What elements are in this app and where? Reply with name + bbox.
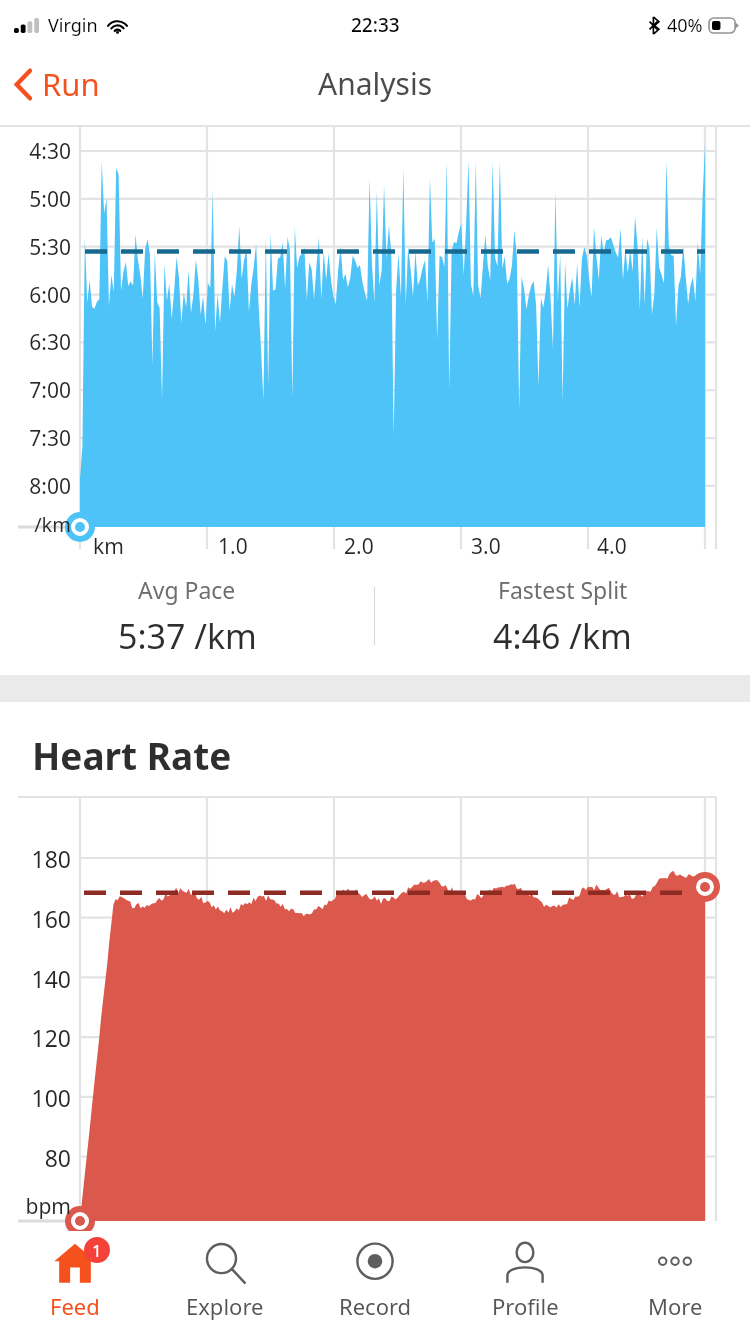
staticText: bpm	[0, 1192, 71, 1221]
button[interactable]: Explore	[150, 1231, 300, 1334]
staticText: Feed	[50, 1291, 100, 1321]
button[interactable]: Profile	[450, 1231, 600, 1334]
staticText: 40%	[667, 13, 703, 38]
staticText: 80	[0, 1142, 71, 1173]
staticText: 8:00	[0, 472, 71, 501]
staticText: More	[648, 1291, 703, 1321]
staticText: 5:00	[0, 185, 71, 214]
staticText: 5:30	[0, 233, 71, 262]
staticText: Virgin	[48, 13, 98, 38]
staticText: Explore	[186, 1291, 264, 1321]
staticText: 160	[0, 903, 71, 934]
staticText: 4:46 /km	[493, 613, 632, 659]
staticText: 6:30	[0, 328, 71, 357]
staticText: /km	[0, 511, 71, 538]
staticText: Run	[42, 63, 100, 105]
staticText: Avg Pace	[138, 574, 236, 605]
button[interactable]: Avg Pace	[0, 557, 374, 675]
staticText: 2.0	[344, 532, 374, 561]
staticText: 4.0	[597, 532, 627, 561]
staticText: 4:30	[0, 137, 71, 166]
staticText: 7:00	[0, 376, 71, 405]
staticText: Fastest Split	[498, 574, 628, 605]
staticText: 120	[0, 1022, 71, 1053]
staticText: 6:00	[0, 281, 71, 310]
staticText: 3.0	[471, 532, 501, 561]
button[interactable]: Run	[0, 57, 118, 111]
staticText: Record	[339, 1291, 412, 1321]
staticText: Analysis	[318, 63, 433, 104]
staticText: 7:30	[0, 424, 71, 453]
button[interactable]: More	[600, 1231, 750, 1334]
staticText: 180	[0, 843, 71, 874]
staticText: Heart Rate	[32, 730, 232, 780]
staticText: 1	[92, 1239, 102, 1262]
staticText: km	[93, 532, 124, 561]
staticText: 1.0	[218, 532, 248, 561]
staticText: 140	[0, 963, 71, 994]
button[interactable]: 1	[0, 1231, 150, 1334]
staticText: Profile	[492, 1291, 559, 1321]
button[interactable]: Fastest Split	[375, 557, 750, 675]
staticText: 22:33	[351, 12, 400, 38]
staticText: 100	[0, 1082, 71, 1113]
staticText: 5:37 /km	[118, 613, 257, 659]
button[interactable]: Record	[300, 1231, 450, 1334]
